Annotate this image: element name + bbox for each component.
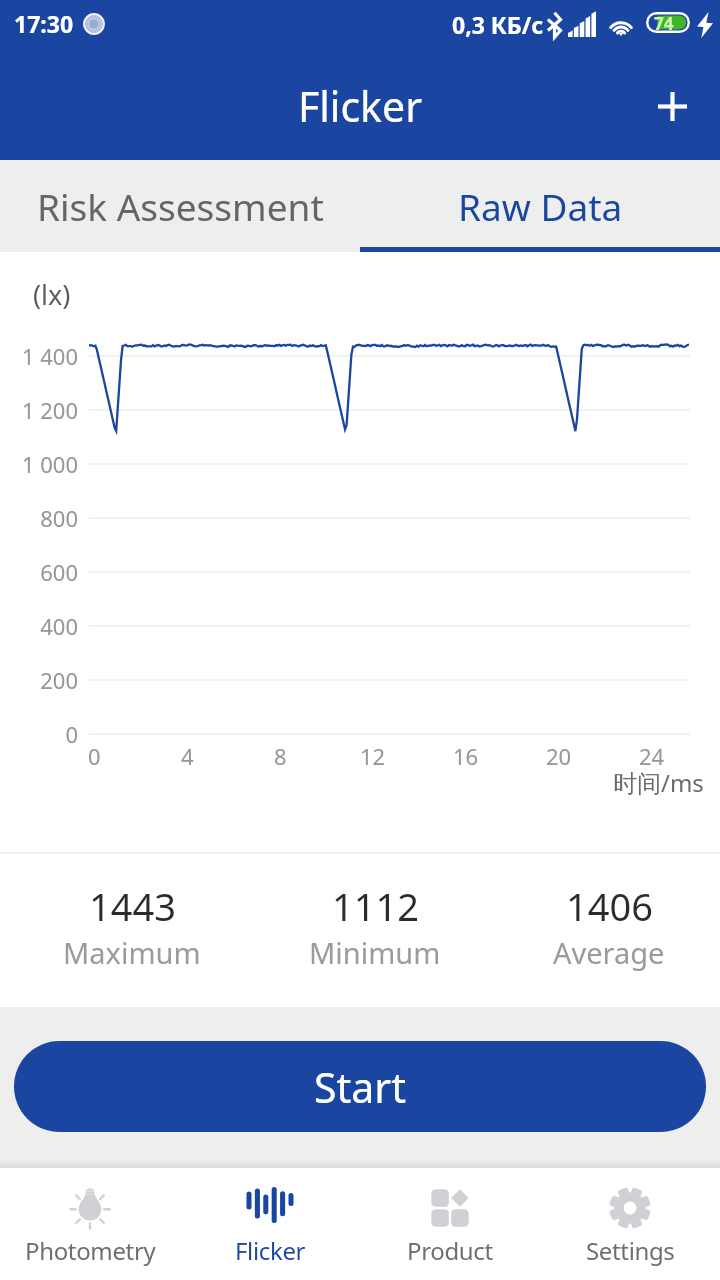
staticText: 8 — [274, 741, 287, 771]
staticText: 0 — [65, 719, 78, 749]
staticText: 1 200 — [21, 395, 78, 425]
staticText: 600 — [40, 557, 78, 587]
staticText: 200 — [40, 665, 78, 695]
button[interactable]: Flicker — [180, 1168, 360, 1280]
staticText: 74 — [654, 12, 674, 33]
staticText: Flicker — [235, 1234, 306, 1266]
staticText: Risk Assessment — [37, 181, 324, 231]
button[interactable]: Product — [360, 1168, 540, 1280]
staticText: 16 — [453, 741, 479, 771]
staticText: Average — [553, 933, 665, 972]
staticText: Product — [407, 1234, 493, 1266]
staticText: 1443 — [89, 880, 176, 932]
button[interactable]: Add — [644, 78, 700, 134]
staticText: 800 — [40, 503, 78, 533]
staticText: Photometry — [25, 1234, 156, 1266]
staticText: Maximum — [63, 933, 201, 972]
staticText: Minimum — [309, 933, 441, 972]
staticText: Flicker — [298, 78, 423, 134]
staticText: 1 400 — [21, 341, 78, 371]
staticText: 17:30 — [14, 8, 74, 39]
staticText: 4 — [181, 741, 194, 771]
staticText: 0,3 КБ/c — [452, 9, 544, 40]
staticText: 1 000 — [21, 449, 78, 479]
staticText: Settings — [586, 1234, 675, 1266]
staticText: Start — [314, 1059, 407, 1115]
staticText: 0 — [88, 741, 101, 771]
staticText: 12 — [360, 741, 386, 771]
staticText: 时间/ms — [613, 766, 704, 798]
staticText: 1112 — [332, 880, 419, 932]
button[interactable]: Photometry — [0, 1168, 180, 1280]
staticText: 24 — [639, 741, 665, 771]
button[interactable]: Start — [14, 1041, 706, 1132]
staticText: 20 — [546, 741, 572, 771]
staticText: 400 — [40, 611, 78, 641]
button[interactable]: Settings — [540, 1168, 720, 1280]
staticText: 1406 — [566, 880, 653, 932]
button[interactable]: Risk Assessment — [0, 160, 360, 252]
staticText: Raw Data — [458, 181, 623, 231]
button[interactable]: Raw Data — [360, 160, 720, 252]
staticText: (lx) — [33, 276, 71, 313]
